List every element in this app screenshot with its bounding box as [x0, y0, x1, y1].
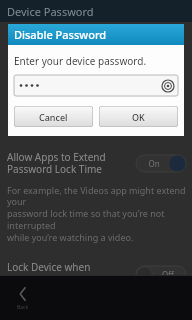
staticText: Allow Apps to Extend Password Lock Time — [7, 150, 136, 176]
button[interactable]: Toggle off — [136, 266, 186, 283]
staticText: Back — [17, 304, 29, 311]
staticText: On — [148, 158, 160, 169]
staticText: OK — [132, 111, 145, 123]
button[interactable]: Show password — [14, 75, 178, 96]
staticText: Off — [162, 269, 174, 280]
button[interactable]: Show password — [160, 78, 175, 93]
staticText: Enter your device password. — [14, 54, 147, 68]
button[interactable]: Cancel — [14, 106, 93, 127]
button[interactable]: OK — [99, 106, 178, 127]
staticText: Cancel — [39, 111, 68, 123]
button[interactable]: Back — [0, 281, 46, 315]
staticText: Lock Device when Holstered — [7, 260, 136, 288]
staticText: For example, the Videos app might extend… — [7, 184, 186, 244]
staticText: Device Password — [7, 4, 94, 19]
staticText: Disable Password — [14, 27, 107, 42]
button[interactable]: Toggle on — [136, 155, 186, 172]
